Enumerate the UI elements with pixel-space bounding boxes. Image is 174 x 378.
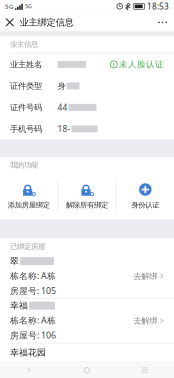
staticText: 去解绑 <box>133 315 157 326</box>
staticText: 18:53 <box>147 1 169 12</box>
staticText: 44 <box>57 102 67 113</box>
staticText: 业主信息 <box>10 39 38 49</box>
staticText: 业主姓名 <box>10 59 42 70</box>
button[interactable]: 幸福 <box>0 299 174 343</box>
staticText: 去解绑 <box>133 271 157 281</box>
staticText: 已绑定房屋 <box>10 242 45 251</box>
staticText: 18- <box>57 123 70 135</box>
staticText: 幸福花园 <box>10 347 46 358</box>
button[interactable]: Close <box>0 13 19 31</box>
staticText: 我的功能 <box>10 160 38 170</box>
staticText: 5G <box>5 2 13 11</box>
staticText: 添加房屋绑定 <box>8 200 50 210</box>
staticText: 房屋号: 105 <box>10 285 56 297</box>
staticText: 栋名称: A栋 <box>10 314 56 326</box>
staticText: 翠 <box>10 256 19 267</box>
staticText: 5G <box>25 3 32 10</box>
staticText: 证件号码 <box>10 102 42 113</box>
staticText: 解除所有绑定 <box>66 200 108 210</box>
button[interactable]: 翠 <box>0 255 174 298</box>
staticText: 未人脸认证 <box>119 59 164 70</box>
staticText: 手机号码 <box>10 124 42 134</box>
button[interactable]: 身份认证 <box>117 173 174 220</box>
staticText: 身份认证 <box>131 200 159 210</box>
staticText: 业主绑定信息 <box>19 16 73 28</box>
staticText: 证件类型 <box>10 81 42 91</box>
button[interactable]: Recent apps <box>116 362 174 378</box>
button[interactable]: 添加房屋绑定 <box>0 173 57 220</box>
button[interactable]: Home <box>58 362 116 378</box>
staticText: 房屋号: 106 <box>10 329 56 341</box>
button[interactable]: More <box>151 13 174 31</box>
button[interactable]: 解除所有绑定 <box>58 173 116 220</box>
staticText: 栋名称: A栋 <box>10 270 56 282</box>
staticText: 身 <box>57 81 65 91</box>
staticText: 幸福 <box>10 300 28 311</box>
